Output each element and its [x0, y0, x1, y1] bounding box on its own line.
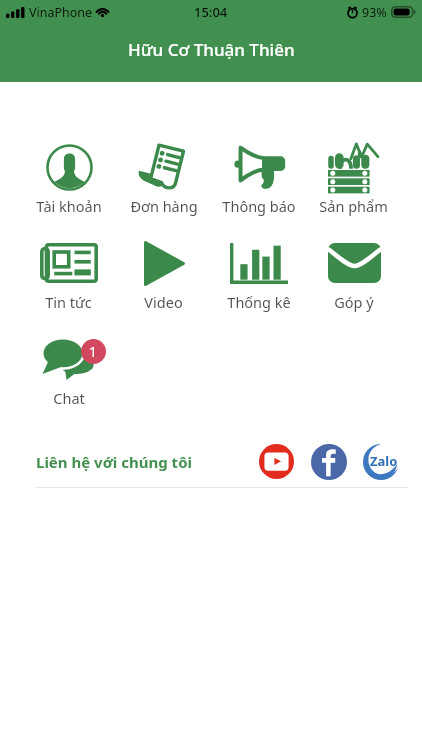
staticText: Chat — [53, 388, 85, 408]
staticText: Sản phẩm — [319, 196, 388, 216]
button[interactable]: Video — [116, 234, 211, 312]
button[interactable]: Facebook — [310, 443, 347, 480]
button[interactable]: Tài khoản — [21, 138, 116, 216]
staticText: Thống kê — [227, 292, 291, 312]
staticText: 1 — [89, 342, 98, 361]
button[interactable]: Zalo — [362, 443, 399, 480]
staticText: Đơn hàng — [130, 196, 198, 216]
button[interactable]: 1 — [21, 330, 116, 408]
button[interactable]: Thông báo — [211, 138, 306, 216]
staticText: Zalo — [370, 452, 398, 470]
staticText: Hữu Cơ Thuận Thiên — [128, 38, 295, 61]
button[interactable]: Tin tức — [21, 234, 116, 312]
staticText: Liên hệ với chúng tôi — [36, 452, 192, 472]
staticText: 93% — [362, 4, 387, 21]
staticText: 15:04 — [194, 3, 228, 21]
staticText: Tin tức — [45, 292, 92, 312]
button[interactable]: Thống kê — [211, 234, 306, 312]
button[interactable]: Góp ý — [306, 234, 401, 312]
staticText: Thông báo — [222, 196, 296, 216]
staticText: Tài khoản — [36, 196, 102, 216]
button[interactable]: Đơn hàng — [116, 138, 211, 216]
staticText: VinaPhone — [29, 4, 93, 21]
button[interactable]: Sản phẩm — [306, 138, 401, 216]
staticText: Góp ý — [334, 292, 374, 312]
staticText: Video — [144, 292, 183, 312]
button[interactable]: YouTube — [258, 443, 295, 480]
